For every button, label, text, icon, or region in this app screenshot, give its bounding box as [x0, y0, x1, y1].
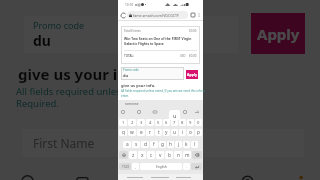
- button[interactable]: Apply: [186, 70, 198, 79]
- button[interactable]: Backspace: [192, 151, 202, 159]
- button[interactable]: 2: [128, 119, 136, 126]
- button[interactable]: Apply: [251, 13, 305, 54]
- button[interactable]: More options: [196, 12, 202, 18]
- button[interactable]: d: [141, 141, 149, 148]
- staticText: u: [173, 129, 176, 136]
- button[interactable]: Keyboard tool 1: [136, 109, 142, 115]
- button[interactable]: fame.smash.com/VGCGCTF: [127, 11, 188, 19]
- staticText: Promo code: [123, 68, 139, 72]
- button[interactable]: Settings: [220, 164, 275, 180]
- button[interactable]: ?123: [119, 163, 131, 170]
- staticText: p: [197, 129, 200, 136]
- staticText: English: [156, 165, 167, 169]
- button[interactable]: g: [159, 141, 166, 148]
- button[interactable]: u: [171, 129, 178, 136]
- button[interactable]: 3: [137, 119, 145, 126]
- button[interactable]: 5: [155, 119, 162, 126]
- button[interactable]: f: [150, 141, 158, 148]
- staticText: .: [186, 164, 187, 169]
- staticText: t: [158, 129, 160, 136]
- staticText: g: [161, 141, 164, 148]
- staticText: u: [173, 112, 177, 119]
- button[interactable]: Reload: [120, 12, 126, 18]
- staticText: o: [189, 129, 192, 136]
- button[interactable]: y: [163, 129, 170, 136]
- staticText: du: [123, 73, 129, 78]
- staticText: m: [185, 152, 190, 159]
- staticText: q: [122, 129, 125, 136]
- button[interactable]: r: [146, 129, 154, 136]
- staticText: someone: [125, 102, 139, 106]
- button[interactable]: q: [119, 129, 127, 136]
- staticText: 2: [131, 120, 134, 126]
- button[interactable]: Keyboard tool 0: [120, 109, 126, 115]
- staticText: v: [159, 152, 162, 159]
- button[interactable]: l: [191, 141, 198, 148]
- button[interactable]: w: [128, 129, 136, 136]
- button[interactable]: Shift: [119, 151, 128, 159]
- staticText: 7: [173, 120, 176, 126]
- button[interactable]: m: [183, 151, 191, 159]
- staticText: fame.smash.com/VGCGCTF: [133, 13, 179, 18]
- button[interactable]: Tabs: [190, 12, 196, 18]
- button[interactable]: 0: [195, 119, 202, 126]
- staticText: USD: [180, 54, 186, 58]
- button[interactable]: Messages: [55, 164, 110, 180]
- button[interactable]: o: [187, 129, 194, 136]
- staticText: d: [144, 141, 147, 148]
- staticText: First Name: [33, 135, 95, 151]
- button[interactable]: p: [195, 129, 202, 136]
- button[interactable]: Enter: [191, 163, 202, 170]
- staticText: n: [177, 152, 180, 159]
- button[interactable]: 6: [163, 119, 170, 126]
- staticText: l: [194, 141, 196, 148]
- button[interactable]: 4: [146, 119, 154, 126]
- staticText: Apply: [257, 24, 300, 44]
- staticText: w: [130, 129, 134, 136]
- button[interactable]: 7: [171, 119, 178, 126]
- button[interactable]: English: [140, 163, 182, 170]
- staticText: 4: [149, 120, 152, 126]
- button[interactable]: k: [183, 141, 190, 148]
- button[interactable]: n: [174, 151, 182, 159]
- staticText: a: [126, 141, 129, 148]
- staticText: f: [153, 141, 155, 148]
- staticText: b: [168, 152, 171, 159]
- staticText: r: [149, 129, 151, 136]
- staticText: i: [182, 129, 184, 136]
- button[interactable]: x: [138, 151, 146, 159]
- button[interactable]: t: [155, 129, 162, 136]
- button[interactable]: c: [147, 151, 155, 159]
- staticText: k: [185, 141, 188, 148]
- staticText: du: [33, 31, 51, 50]
- button[interactable]: Keyboard tool 4: [182, 109, 188, 115]
- button[interactable]: z: [129, 151, 137, 159]
- button[interactable]: Keyboard tool 2: [152, 109, 158, 115]
- staticText: 8: [181, 120, 184, 126]
- button[interactable]: Keyboard tool 3: [168, 109, 174, 115]
- button[interactable]: b: [165, 151, 173, 159]
- button[interactable]: .: [183, 163, 190, 170]
- staticText: 6: [165, 120, 168, 126]
- button[interactable]: a: [123, 141, 131, 148]
- staticText: j: [178, 141, 180, 148]
- button[interactable]: s: [132, 141, 140, 148]
- button[interactable]: ,: [132, 163, 139, 170]
- button[interactable]: Explore: [165, 164, 220, 180]
- button[interactable]: v: [156, 151, 164, 159]
- button[interactable]: 1: [119, 119, 127, 126]
- staticText: Promo code: [33, 19, 85, 31]
- button[interactable]: i: [179, 129, 186, 136]
- button[interactable]: More: [275, 164, 320, 180]
- button[interactable]: j: [175, 141, 182, 148]
- staticText: 10:10: [125, 3, 134, 7]
- button[interactable]: Keyboard tool 5: [194, 109, 200, 115]
- staticText: TOTAL:: [124, 54, 135, 58]
- button[interactable]: 8: [179, 119, 186, 126]
- button[interactable]: 9: [187, 119, 194, 126]
- button[interactable]: e: [137, 129, 145, 136]
- staticText: All fields required unless noted. Requir…: [16, 85, 157, 110]
- button[interactable]: Profile: [0, 164, 55, 180]
- button[interactable]: h: [167, 141, 174, 148]
- button[interactable]: Feed: [110, 164, 165, 180]
